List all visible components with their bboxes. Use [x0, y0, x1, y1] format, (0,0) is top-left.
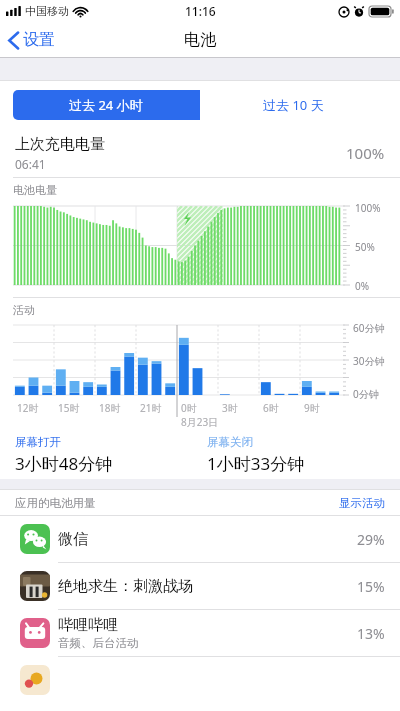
- staticText: 中国移动: [25, 4, 69, 18]
- staticText: 12时: [17, 401, 39, 415]
- staticText: 0时: [181, 401, 197, 415]
- staticText: 60分钟: [353, 321, 385, 335]
- staticText: 设置: [23, 30, 55, 50]
- staticText: 哔哩哔哩: [58, 616, 118, 635]
- staticText: 0分钟: [353, 387, 379, 401]
- staticText: 30分钟: [353, 354, 385, 368]
- staticText: 绝地求生：刺激战场: [58, 577, 193, 596]
- staticText: 上次充电电量: [15, 135, 105, 154]
- staticText: 11:16: [185, 3, 216, 19]
- staticText: 电池: [184, 30, 216, 50]
- staticText: 过去 24 小时: [69, 96, 143, 114]
- staticText: 电池电量: [13, 183, 57, 197]
- staticText: 3时: [222, 401, 238, 415]
- staticText: 应用的电池用量: [15, 496, 96, 510]
- staticText: 微信: [58, 530, 88, 549]
- staticText: 屏幕关闭: [207, 435, 253, 449]
- button[interactable]: 过去 10 天: [200, 90, 387, 120]
- staticText: 1小时33分钟: [207, 452, 305, 475]
- staticText: 15时: [58, 401, 80, 415]
- staticText: 29%: [357, 530, 385, 549]
- staticText: 屏幕打开: [15, 435, 61, 449]
- button[interactable]: [0, 657, 400, 703]
- button[interactable]: 显示活动: [339, 496, 385, 510]
- staticText: 过去 10 天: [263, 96, 324, 114]
- staticText: 18时: [99, 401, 121, 415]
- staticText: 100%: [346, 143, 385, 163]
- staticText: 活动: [13, 303, 35, 317]
- staticText: 21时: [140, 401, 162, 415]
- staticText: 6时: [263, 401, 279, 415]
- button[interactable]: 哔哩哔哩: [0, 610, 400, 656]
- button[interactable]: 绝地求生：刺激战场: [0, 563, 400, 609]
- staticText: 50%: [355, 240, 375, 254]
- staticText: 06:41: [15, 156, 46, 172]
- button[interactable]: 微信: [0, 516, 400, 562]
- staticText: 0%: [355, 279, 370, 293]
- button[interactable]: 上次充电电量: [0, 129, 400, 177]
- staticText: 13%: [357, 624, 385, 643]
- button[interactable]: 设置: [0, 26, 65, 54]
- staticText: 3小时48分钟: [15, 452, 113, 475]
- staticText: 显示活动: [339, 496, 385, 510]
- button[interactable]: 过去 24 小时: [13, 90, 199, 120]
- staticText: 音频、后台活动: [58, 636, 139, 650]
- staticText: 9时: [304, 401, 320, 415]
- staticText: 15%: [357, 577, 385, 596]
- staticText: 100%: [355, 201, 381, 215]
- staticText: 8月23日: [181, 415, 219, 429]
